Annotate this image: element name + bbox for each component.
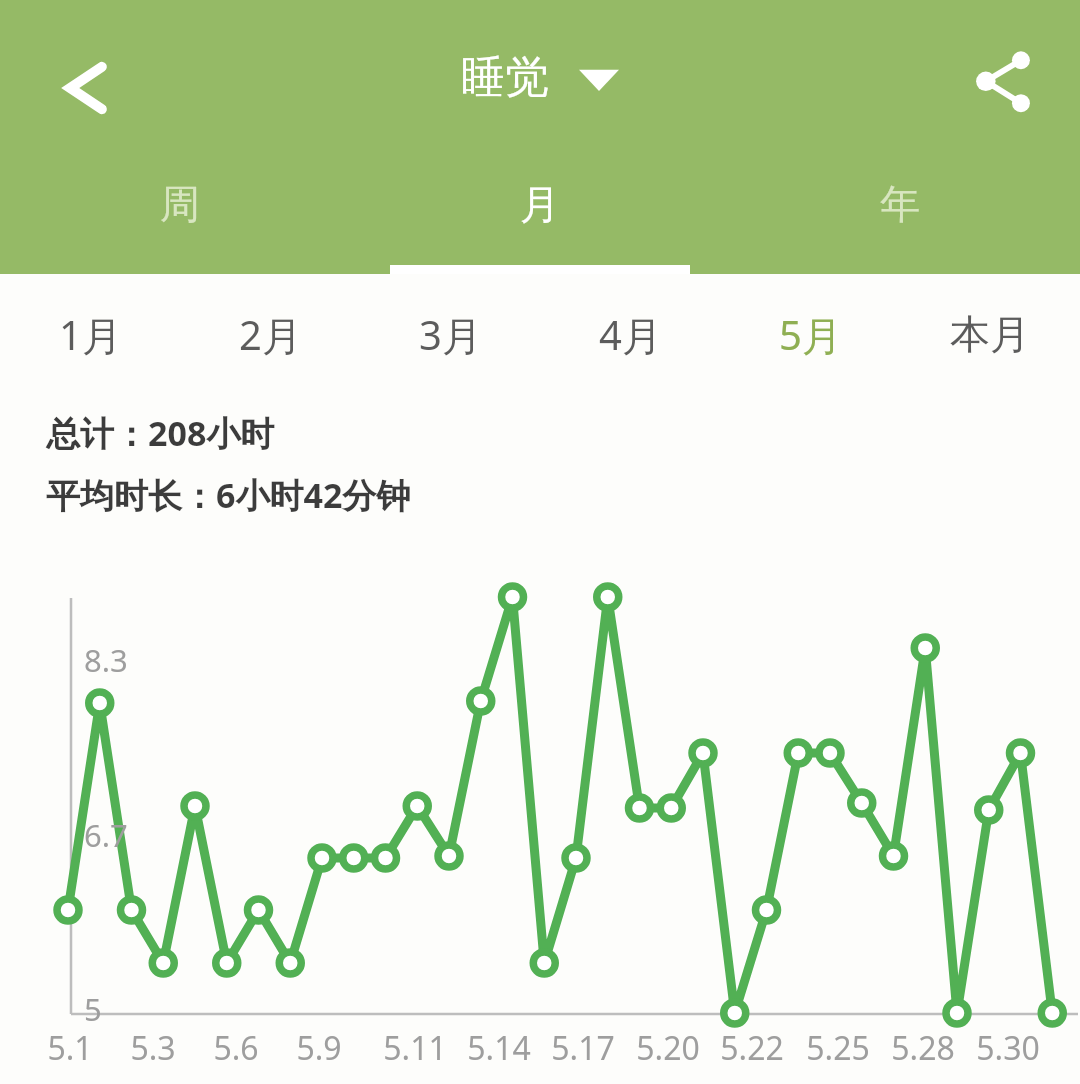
staticText: 1月 <box>59 307 122 362</box>
staticText: 5.17 <box>528 1026 638 1070</box>
staticText: 5.11 <box>360 1026 470 1070</box>
staticText: 5.20 <box>613 1026 723 1070</box>
button[interactable]: 2月 <box>180 274 360 394</box>
staticText: 5.28 <box>868 1026 978 1070</box>
staticText: 2月 <box>239 307 302 362</box>
staticText: 3月 <box>419 307 482 362</box>
staticText: 本月 <box>950 309 1030 359</box>
button[interactable]: Back <box>42 44 130 132</box>
button[interactable]: 周 <box>0 154 360 274</box>
button[interactable]: 5月 <box>720 274 900 394</box>
staticText: 周 <box>160 179 200 229</box>
staticText: 5.25 <box>783 1026 893 1070</box>
staticText: 年 <box>880 179 920 229</box>
button[interactable]: 4月 <box>540 274 720 394</box>
button[interactable]: 睡觉 <box>461 50 619 105</box>
button[interactable]: 年 <box>720 154 1080 274</box>
button[interactable]: 3月 <box>360 274 540 394</box>
staticText: 5 <box>84 988 102 1030</box>
staticText: 月 <box>520 179 560 229</box>
button[interactable]: 月 <box>360 154 720 274</box>
staticText: 睡觉 <box>461 50 549 105</box>
staticText: 5月 <box>779 307 842 362</box>
button[interactable]: 1月 <box>0 274 180 394</box>
button[interactable]: Share <box>964 40 1042 118</box>
staticText: 5.14 <box>444 1026 554 1070</box>
staticText: 5.30 <box>953 1026 1063 1070</box>
staticText: 5.1 <box>15 1026 125 1070</box>
staticText: 6.7 <box>84 814 128 856</box>
staticText: 8.3 <box>84 639 128 681</box>
button[interactable]: 本月 <box>900 274 1080 394</box>
staticText: 平均时长：6小时42分钟 <box>46 472 411 518</box>
staticText: 总计：208小时 <box>46 410 275 456</box>
staticText: 5.22 <box>697 1026 807 1070</box>
staticText: 5.3 <box>98 1026 208 1070</box>
staticText: 4月 <box>599 307 662 362</box>
staticText: 5.6 <box>181 1026 291 1070</box>
staticText: 5.9 <box>264 1026 374 1070</box>
